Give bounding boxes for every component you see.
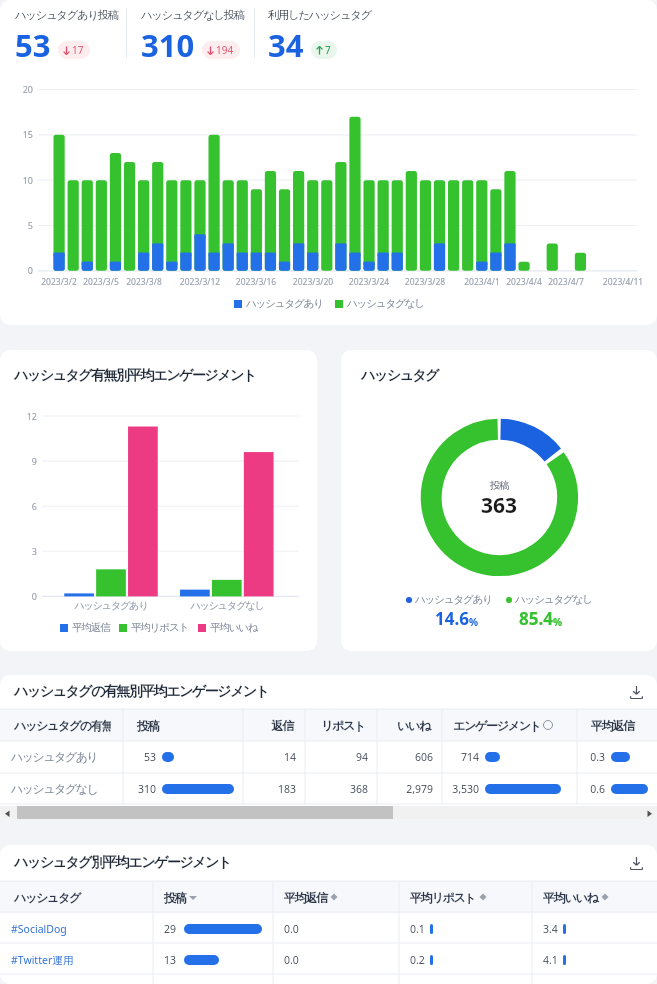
staticText: 2023/3/16 [226, 276, 286, 288]
staticText: 14 [252, 750, 296, 764]
staticText: 投稿 [449, 479, 549, 492]
staticText: ハッシュタグ [14, 890, 141, 905]
staticText: 投稿 [137, 718, 231, 733]
staticText: 85.4 [519, 607, 553, 630]
staticText: 183 [252, 782, 296, 796]
staticText: ハッシュタグなし [182, 599, 272, 612]
staticText: ハッシュタグなし [515, 593, 592, 606]
staticText: ハッシュタグなし [11, 782, 98, 797]
staticText: 2023/3/20 [283, 276, 343, 288]
staticText: いいね [385, 718, 430, 733]
staticText: ハッシュタグの有無別平均エンゲージメント [14, 683, 269, 701]
staticText: 13 [164, 953, 181, 967]
staticText: 14.6 [435, 607, 469, 630]
staticText: 0 [12, 590, 37, 602]
button[interactable]: Download [625, 681, 647, 703]
staticText: 34 [268, 24, 304, 66]
staticText: 利用したハッシュタグ [268, 8, 371, 22]
staticText: 606 [386, 750, 433, 764]
staticText: ハッシュタグあり [415, 593, 492, 606]
staticText: 2023/3/2 [29, 276, 89, 288]
staticText: 平均返信 [284, 890, 327, 905]
staticText: 368 [314, 782, 368, 796]
staticText: 310 [141, 24, 195, 66]
staticText: 0 [6, 264, 33, 276]
staticText: 平均リポスト [131, 621, 189, 634]
staticText: % [553, 615, 563, 629]
staticText: 6 [12, 500, 37, 512]
staticText: ハッシュタグあり [66, 599, 156, 612]
staticText: 29 [164, 922, 181, 936]
staticText: ハッシュタグあり投稿 [15, 8, 118, 22]
staticText: 2023/4/1 [452, 276, 512, 288]
staticText: 平均リポスト [410, 890, 476, 905]
staticText: 2023/3/5 [71, 276, 131, 288]
staticText: ハッシュタグなし投稿 [141, 8, 244, 22]
staticText: 17 [72, 43, 84, 57]
staticText: 0.0 [284, 922, 299, 936]
staticText: 2023/3/24 [339, 276, 399, 288]
staticText: #Twitter運用 [11, 953, 74, 967]
staticText: 4.1 [543, 953, 560, 967]
staticText: 3,530 [451, 782, 479, 796]
staticText: 20 [6, 83, 33, 95]
staticText: 2023/3/28 [395, 276, 455, 288]
staticText: 310 [132, 782, 156, 796]
staticText: 10 [6, 174, 33, 186]
staticText: ハッシュタグなし [347, 297, 424, 310]
staticText: 平均いいね [210, 621, 258, 634]
staticText: #SocialDog [11, 922, 67, 936]
staticText: 5 [6, 219, 33, 231]
staticText: 投稿 [164, 890, 186, 905]
staticText: 返信 [251, 718, 293, 733]
staticText: 3 [12, 545, 37, 557]
staticText: 平均いいね [543, 890, 598, 905]
staticText: エンゲージメント [453, 718, 541, 733]
staticText: 平均返信 [72, 621, 110, 634]
staticText: ハッシュタグあり [246, 297, 323, 310]
staticText: 2023/3/12 [170, 276, 230, 288]
staticText: 12 [12, 410, 37, 422]
staticText: ハッシュタグ有無別平均エンゲージメント [14, 367, 256, 385]
staticText: 平均返信 [591, 718, 645, 733]
staticText: 0.3 [586, 750, 605, 764]
staticText: 2023/3/8 [114, 276, 174, 288]
staticText: 3.4 [543, 922, 560, 936]
staticText: 2023/4/4 [494, 276, 554, 288]
staticText: ハッシュタグあり [11, 750, 98, 765]
staticText: 0.0 [284, 953, 299, 967]
staticText: % [469, 615, 479, 629]
staticText: 94 [314, 750, 368, 764]
staticText: 194 [216, 43, 234, 57]
staticText: 53 [132, 750, 156, 764]
button[interactable]: Download [625, 852, 647, 874]
staticText: 2023/4/11 [593, 276, 653, 288]
staticText: 2023/4/7 [536, 276, 596, 288]
staticText: 363 [449, 491, 549, 520]
staticText: 9 [12, 455, 37, 467]
staticText: ハッシュタグ別平均エンゲージメント [14, 854, 231, 872]
staticText: 0.6 [586, 782, 605, 796]
staticText: 7 [325, 43, 331, 57]
staticText: 0.2 [410, 953, 427, 967]
staticText: リポスト [313, 718, 365, 733]
staticText: 2,979 [386, 782, 433, 796]
staticText: ハッシュタグの有無 [14, 718, 111, 733]
staticText: 714 [451, 750, 479, 764]
staticText: ハッシュタグ [361, 367, 438, 385]
staticText: 15 [6, 128, 33, 140]
staticText: 0.1 [410, 922, 427, 936]
staticText: 53 [15, 24, 51, 66]
